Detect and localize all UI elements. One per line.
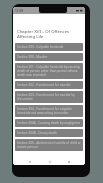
button[interactable]: Section 302 - Punishment for murder — [15, 81, 83, 89]
staticText: Section 304 - Punishment for culpable ho… — [17, 107, 81, 115]
button[interactable]: Section 301 - Culpable homicide by causi… — [15, 63, 83, 79]
button[interactable]: Section 304B - Dowry death — [15, 129, 83, 137]
staticText: Section 301 - Culpable homicide by causi… — [17, 65, 81, 77]
button[interactable]: Section 305 - Abetment of suicide of chi… — [15, 139, 83, 151]
button[interactable]: Section 303 - Punishment for murder by l… — [15, 91, 83, 103]
button[interactable]: Recents — [65, 158, 72, 165]
staticText: Section 303 - Punishment for murder by l… — [17, 93, 81, 101]
staticText: 12:38 — [15, 9, 24, 13]
staticText: Section 304B - Dowry death — [17, 131, 57, 135]
button[interactable]: Section 304 - Punishment for culpable ho… — [15, 105, 83, 117]
staticText: Section 305 - Abetment of suicide of chi… — [17, 141, 81, 149]
button[interactable]: Home — [46, 158, 53, 165]
staticText: Section 299 - Culpable homicide — [17, 45, 64, 49]
staticText: Section 300 - Murder — [17, 55, 48, 59]
staticText: Section 304A - Causing death by negligen… — [17, 121, 81, 125]
button[interactable]: Section 304A - Causing death by negligen… — [15, 119, 83, 127]
button[interactable]: Back — [26, 158, 33, 165]
button[interactable]: Section 300 - Murder — [15, 53, 83, 61]
staticText: Chapter XVI – Of Offences Affecting Life — [17, 28, 70, 40]
button[interactable]: Section 299 - Culpable homicide — [15, 43, 83, 51]
staticText: Section 302 - Punishment for murder — [17, 83, 71, 87]
